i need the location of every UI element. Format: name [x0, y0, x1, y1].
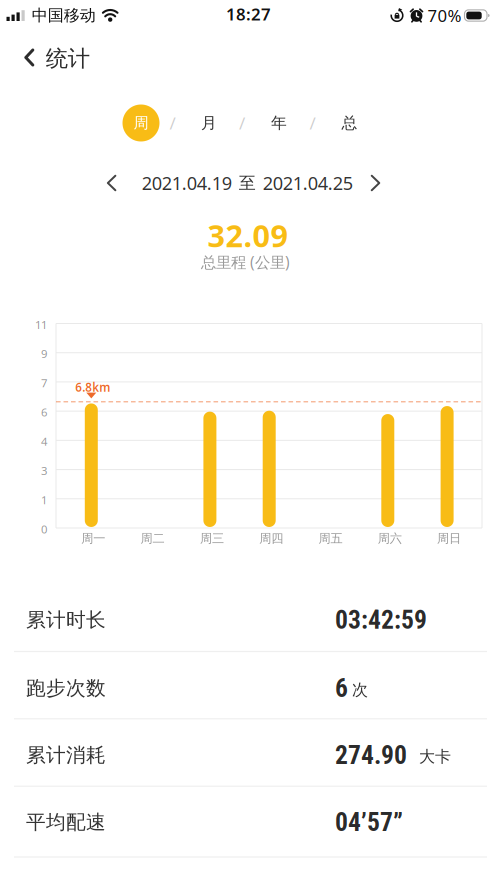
staticText: 累计消耗 — [26, 743, 106, 767]
staticText: 次 — [352, 680, 368, 700]
staticText: 2021.04.19 — [142, 171, 232, 195]
button[interactable]: 下一周 — [365, 169, 386, 197]
staticText: / — [309, 112, 315, 134]
staticText: 18:27 — [226, 3, 271, 25]
staticText: 总 — [341, 113, 357, 133]
button[interactable]: 总 — [335, 107, 363, 139]
staticText: 6 — [41, 405, 47, 420]
button[interactable]: 返回 — [16, 40, 42, 74]
staticText: 1 — [41, 492, 47, 507]
button[interactable]: 月 — [195, 107, 223, 139]
staticText: 04’57” — [335, 807, 403, 837]
button[interactable]: 周 — [122, 104, 159, 141]
staticText: 月 — [201, 113, 217, 133]
staticText: 0 — [41, 521, 47, 536]
staticText: 中国移动 — [32, 6, 96, 25]
staticText: 11 — [35, 317, 47, 332]
staticText: 年 — [271, 113, 287, 133]
staticText: 至 — [239, 173, 256, 193]
staticText: 32.09 — [207, 215, 288, 256]
staticText: 周 — [133, 114, 148, 132]
staticText: 274.90 — [335, 740, 407, 770]
staticText: 累计时长 — [26, 608, 106, 632]
staticText: 周六 — [378, 531, 402, 546]
staticText: 周日 — [437, 531, 461, 546]
staticText: 2021.04.25 — [263, 171, 353, 195]
staticText: 平均配速 — [26, 810, 106, 834]
button[interactable]: 上一周 — [101, 169, 122, 197]
staticText: 跑步次数 — [26, 676, 106, 700]
staticText: 7 — [41, 375, 47, 390]
staticText: 周五 — [318, 531, 342, 546]
staticText: 4 — [41, 434, 47, 449]
staticText: 总里程 (公里) — [201, 252, 290, 272]
staticText: 大卡 — [419, 747, 451, 767]
staticText: 70% — [427, 4, 461, 27]
staticText: 周四 — [259, 531, 283, 546]
staticText: 周二 — [141, 531, 165, 546]
staticText: / — [239, 112, 245, 134]
staticText: 周三 — [200, 531, 224, 546]
staticText: / — [169, 112, 175, 134]
staticText: 3 — [41, 463, 47, 478]
staticText: 03:42:59 — [335, 605, 427, 635]
staticText: 9 — [41, 346, 47, 361]
staticText: 统计 — [46, 45, 90, 72]
button[interactable]: 年 — [265, 107, 293, 139]
staticText: 周一 — [81, 531, 105, 546]
staticText: 6 — [335, 673, 348, 703]
staticText: 6.8km — [75, 380, 110, 395]
